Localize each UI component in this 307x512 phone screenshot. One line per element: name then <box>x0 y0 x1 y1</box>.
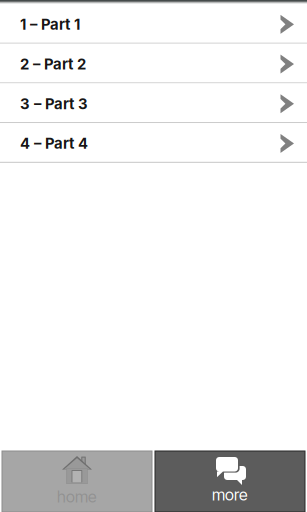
button[interactable]: 3 – Part 3 <box>0 83 307 122</box>
staticText: 1 – Part 1 <box>20 15 80 33</box>
button[interactable]: 1 – Part 1 <box>0 4 307 43</box>
button[interactable]: 2 – Part 2 <box>0 44 307 82</box>
button[interactable]: home <box>2 451 152 512</box>
button[interactable]: more <box>155 451 305 512</box>
staticText: 4 – Part 4 <box>20 134 88 152</box>
staticText: more <box>212 485 248 504</box>
button[interactable]: 4 – Part 4 <box>0 123 307 162</box>
staticText: 2 – Part 2 <box>20 55 86 73</box>
staticText: 3 – Part 3 <box>20 95 88 113</box>
staticText: home <box>57 487 97 506</box>
